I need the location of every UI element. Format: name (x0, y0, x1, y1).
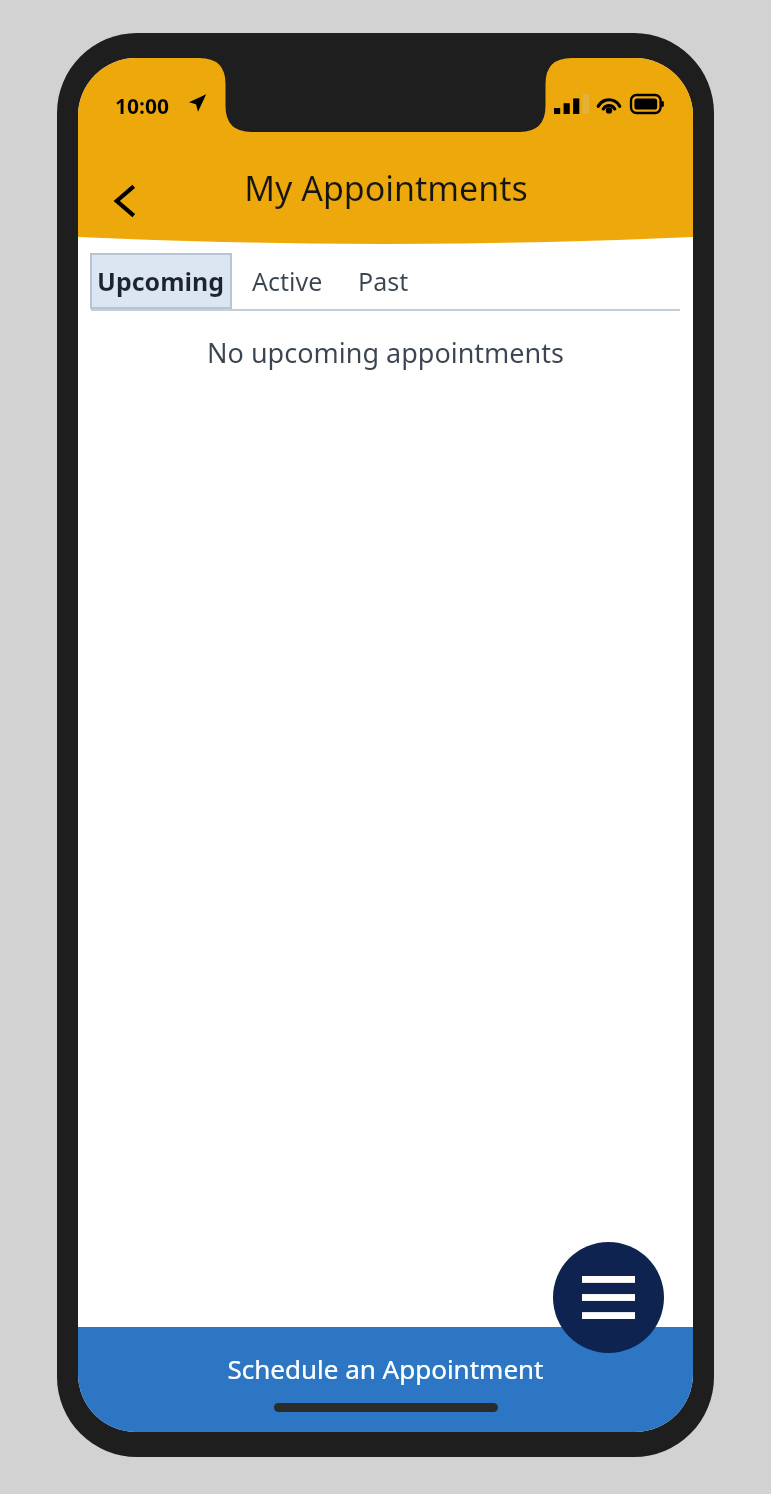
button[interactable]: Menu (553, 1242, 664, 1353)
button[interactable]: Upcoming (91, 254, 231, 308)
staticText: Past (358, 264, 409, 298)
button[interactable]: Schedule an Appointment (78, 1327, 693, 1432)
button[interactable]: Active (237, 254, 337, 308)
button[interactable]: Past (341, 254, 425, 308)
staticText: Active (252, 264, 323, 298)
button[interactable]: Back (90, 166, 160, 236)
staticText: My Appointments (244, 165, 528, 211)
staticText: No upcoming appointments (207, 334, 564, 371)
staticText: Schedule an Appointment (227, 1351, 544, 1386)
staticText: 10:00 (115, 92, 169, 121)
staticText: Upcoming (97, 264, 225, 298)
